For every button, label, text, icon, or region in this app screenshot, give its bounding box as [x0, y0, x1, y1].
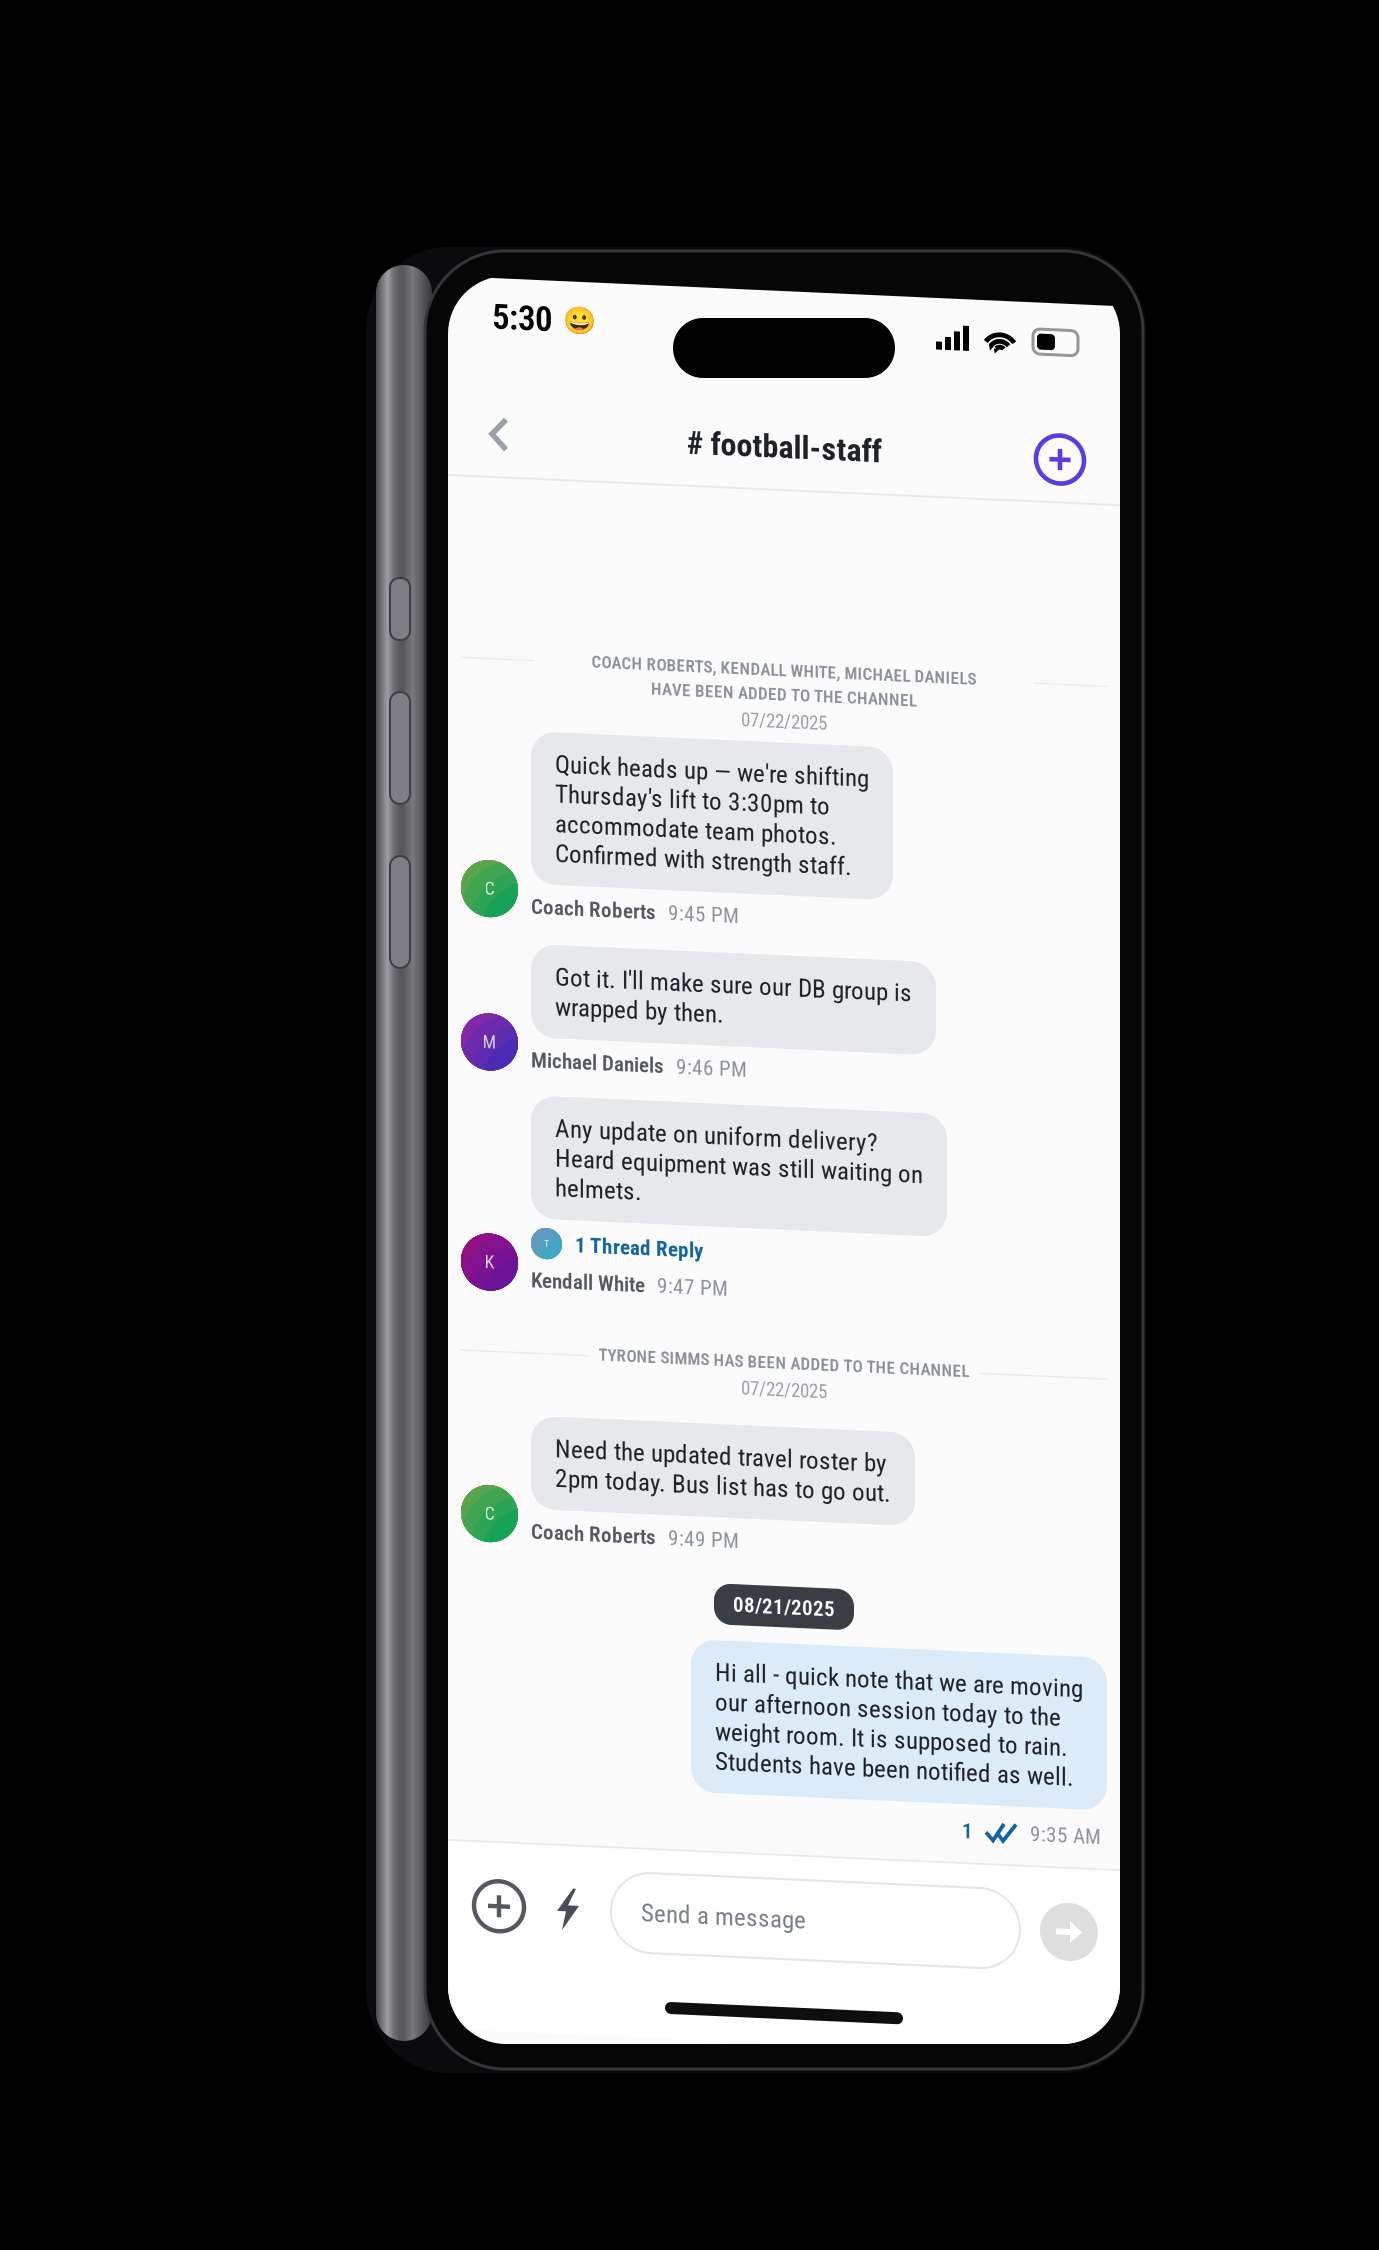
staticText: Need the updated travel roster by: [555, 1429, 887, 1459]
staticText: Coach Roberts: [531, 1515, 656, 1540]
staticText: 9:45 PM: [668, 890, 739, 915]
staticText: 1 Thread Reply: [575, 1227, 704, 1252]
staticText: 9:35 AM: [1030, 1795, 1101, 1820]
staticText: 1: [962, 1795, 973, 1820]
staticText: 9:46 PM: [676, 1044, 747, 1069]
staticText: COACH ROBERTS, KENDALL WHITE, MICHAEL DA…: [591, 645, 976, 665]
staticText: 08/21/2025: [733, 1579, 835, 1604]
staticText: Thursday's lift to 3:30pm to: [555, 774, 830, 804]
staticText: Any update on uniform delivery?: [555, 1109, 878, 1138]
staticText: weight room. It is supposed to rain.: [715, 1705, 1068, 1734]
staticText: # football-staff: [686, 413, 881, 451]
staticText: 5:30: [492, 295, 552, 335]
staticText: K: [484, 1249, 494, 1271]
staticText: Got it. I'll make sure our DB group is: [555, 957, 912, 987]
staticText: Michael Daniels: [531, 1044, 664, 1069]
staticText: accommodate team photos.: [555, 804, 837, 834]
staticText: helmets.: [555, 1168, 642, 1198]
button[interactable]: New message: [1024, 396, 1096, 468]
staticText: Confirmed with strength staff.: [555, 834, 852, 863]
staticText: Hi all - quick note that we are moving: [715, 1645, 1083, 1675]
staticText: Coach Roberts: [531, 890, 656, 915]
staticText: 07/22/2025: [741, 696, 827, 717]
staticText: 9:49 PM: [668, 1515, 739, 1540]
staticText: HAVE BEEN ADDED TO THE CHANNEL: [651, 669, 917, 690]
button[interactable]: Send a message: [597, 1864, 1020, 1944]
staticText: 9:47 PM: [657, 1264, 728, 1289]
button[interactable]: Attach: [448, 1867, 540, 1941]
staticText: wrapped by then.: [555, 987, 724, 1017]
staticText: 07/22/2025: [741, 1364, 827, 1386]
staticText: Send a message: [641, 1889, 806, 1919]
staticText: Quick heads up — we're shifting: [555, 744, 869, 774]
staticText: Kendall White: [531, 1264, 645, 1289]
staticText: 😀: [563, 299, 596, 331]
staticText: 2pm today. Bus list has to go out.: [555, 1458, 891, 1488]
staticText: our afternoon session today to the: [715, 1675, 1061, 1705]
button[interactable]: Send: [1020, 1875, 1120, 1933]
button[interactable]: Shortcuts: [540, 1877, 597, 1931]
staticText: C: [484, 1501, 494, 1522]
button[interactable]: Back: [472, 402, 527, 462]
staticText: T: [544, 1233, 549, 1245]
staticText: TYRONE SIMMS HAS BEEN ADDED TO THE CHANN…: [598, 1338, 969, 1358]
staticText: Students have been notified as well.: [715, 1734, 1074, 1764]
staticText: Heard equipment was still waiting on: [555, 1138, 923, 1168]
staticText: C: [484, 876, 494, 897]
staticText: M: [482, 1029, 496, 1051]
